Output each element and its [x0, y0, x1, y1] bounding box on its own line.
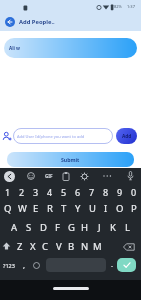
staticText: Add — [122, 133, 132, 140]
staticText: N — [81, 240, 89, 253]
button[interactable]: X — [26, 237, 39, 256]
staticText: H — [81, 221, 89, 234]
staticText: Add User Id/phone you want to add — [17, 134, 85, 139]
staticText: C — [42, 240, 49, 253]
button[interactable]: L — [120, 218, 134, 237]
button[interactable]: B — [65, 237, 78, 256]
button[interactable]: H — [78, 218, 92, 237]
staticText: Submit — [61, 156, 80, 163]
button[interactable]: W — [15, 199, 29, 218]
button[interactable] — [33, 262, 40, 269]
staticText: L — [125, 221, 130, 234]
button[interactable] — [27, 172, 35, 180]
button[interactable]: 6 — [71, 184, 85, 199]
staticText: 5 — [61, 186, 67, 198]
staticText: B — [68, 240, 75, 253]
staticText: 9 — [117, 186, 123, 198]
button[interactable]: O — [113, 199, 127, 218]
button[interactable]: Z — [13, 237, 26, 256]
button[interactable]: . — [111, 259, 114, 269]
staticText: 4 — [47, 186, 53, 198]
staticText: T — [61, 202, 67, 215]
staticText: O — [116, 202, 124, 215]
button[interactable]: C — [39, 237, 52, 256]
staticText: R — [47, 202, 53, 215]
staticText: Q — [4, 202, 12, 215]
staticText: 1:37 — [127, 4, 135, 9]
button[interactable]: F — [50, 218, 64, 237]
staticText: 82% — [114, 4, 122, 9]
button[interactable]: GIF — [45, 173, 53, 179]
button[interactable] — [4, 171, 15, 182]
button[interactable]: Q — [0, 199, 15, 218]
staticText: X — [30, 240, 36, 253]
button[interactable]: Y — [71, 199, 85, 218]
staticText: S — [26, 221, 32, 234]
staticText: 7 — [89, 186, 95, 198]
button[interactable] — [103, 175, 112, 178]
staticText: A — [11, 221, 18, 234]
button[interactable]: D — [36, 218, 50, 237]
staticText: D — [40, 221, 47, 234]
button[interactable] — [117, 258, 136, 272]
button[interactable] — [80, 172, 89, 181]
button[interactable]: 0 — [127, 184, 141, 199]
staticText: U — [89, 202, 96, 215]
staticText: F — [55, 221, 60, 234]
staticText: E — [33, 202, 39, 215]
staticText: Y — [75, 202, 81, 215]
button[interactable]: U — [85, 199, 99, 218]
button[interactable]: Submit — [7, 152, 134, 167]
staticText: Add People.. — [19, 18, 55, 26]
staticText: Ali w — [9, 45, 21, 51]
button[interactable]: S — [22, 218, 36, 237]
staticText: 3 — [33, 186, 39, 198]
button[interactable]: 8 — [99, 184, 113, 199]
button[interactable]: R — [43, 199, 57, 218]
button[interactable]: 7 — [85, 184, 99, 199]
button[interactable] — [62, 172, 70, 181]
button[interactable]: V — [52, 237, 65, 256]
button[interactable]: 2 — [15, 184, 29, 199]
button[interactable]: J — [92, 218, 106, 237]
button[interactable] — [5, 17, 15, 27]
button[interactable]: 9 — [113, 184, 127, 199]
button[interactable]: ?123 — [3, 262, 15, 269]
staticText: Z — [17, 240, 23, 253]
button[interactable]: N — [78, 237, 91, 256]
button[interactable]: T — [57, 199, 71, 218]
button[interactable]: P — [127, 199, 141, 218]
staticText: K — [110, 221, 116, 234]
button[interactable] — [127, 171, 134, 181]
button[interactable]: , — [23, 260, 26, 270]
button[interactable] — [104, 237, 141, 256]
staticText: 6 — [75, 186, 81, 198]
staticText: 2 — [19, 186, 25, 198]
button[interactable]: 3 — [29, 184, 43, 199]
staticText: I — [104, 202, 108, 215]
button[interactable]: E — [29, 199, 43, 218]
button[interactable]: 5 — [57, 184, 71, 199]
button[interactable]: Add — [116, 128, 137, 144]
button[interactable]: I — [99, 199, 113, 218]
staticText: 0 — [131, 186, 137, 198]
button[interactable]: Ali w — [4, 38, 137, 58]
staticText: V — [56, 240, 62, 253]
staticText: W — [18, 202, 27, 215]
staticText: J — [98, 221, 101, 234]
button[interactable]: 1 — [0, 184, 15, 199]
button[interactable]: K — [106, 218, 120, 237]
button[interactable]: M — [91, 237, 104, 256]
button[interactable]: G — [64, 218, 78, 237]
staticText: P — [131, 202, 137, 215]
button[interactable] — [0, 237, 13, 256]
staticText: M — [93, 240, 102, 253]
staticText: G — [68, 221, 75, 234]
button[interactable]: A — [7, 218, 22, 237]
staticText: 8 — [103, 186, 109, 198]
staticText: 1 — [5, 186, 11, 198]
button[interactable]: Add User Id/phone you want to add — [13, 128, 113, 144]
button[interactable]: 4 — [43, 184, 57, 199]
